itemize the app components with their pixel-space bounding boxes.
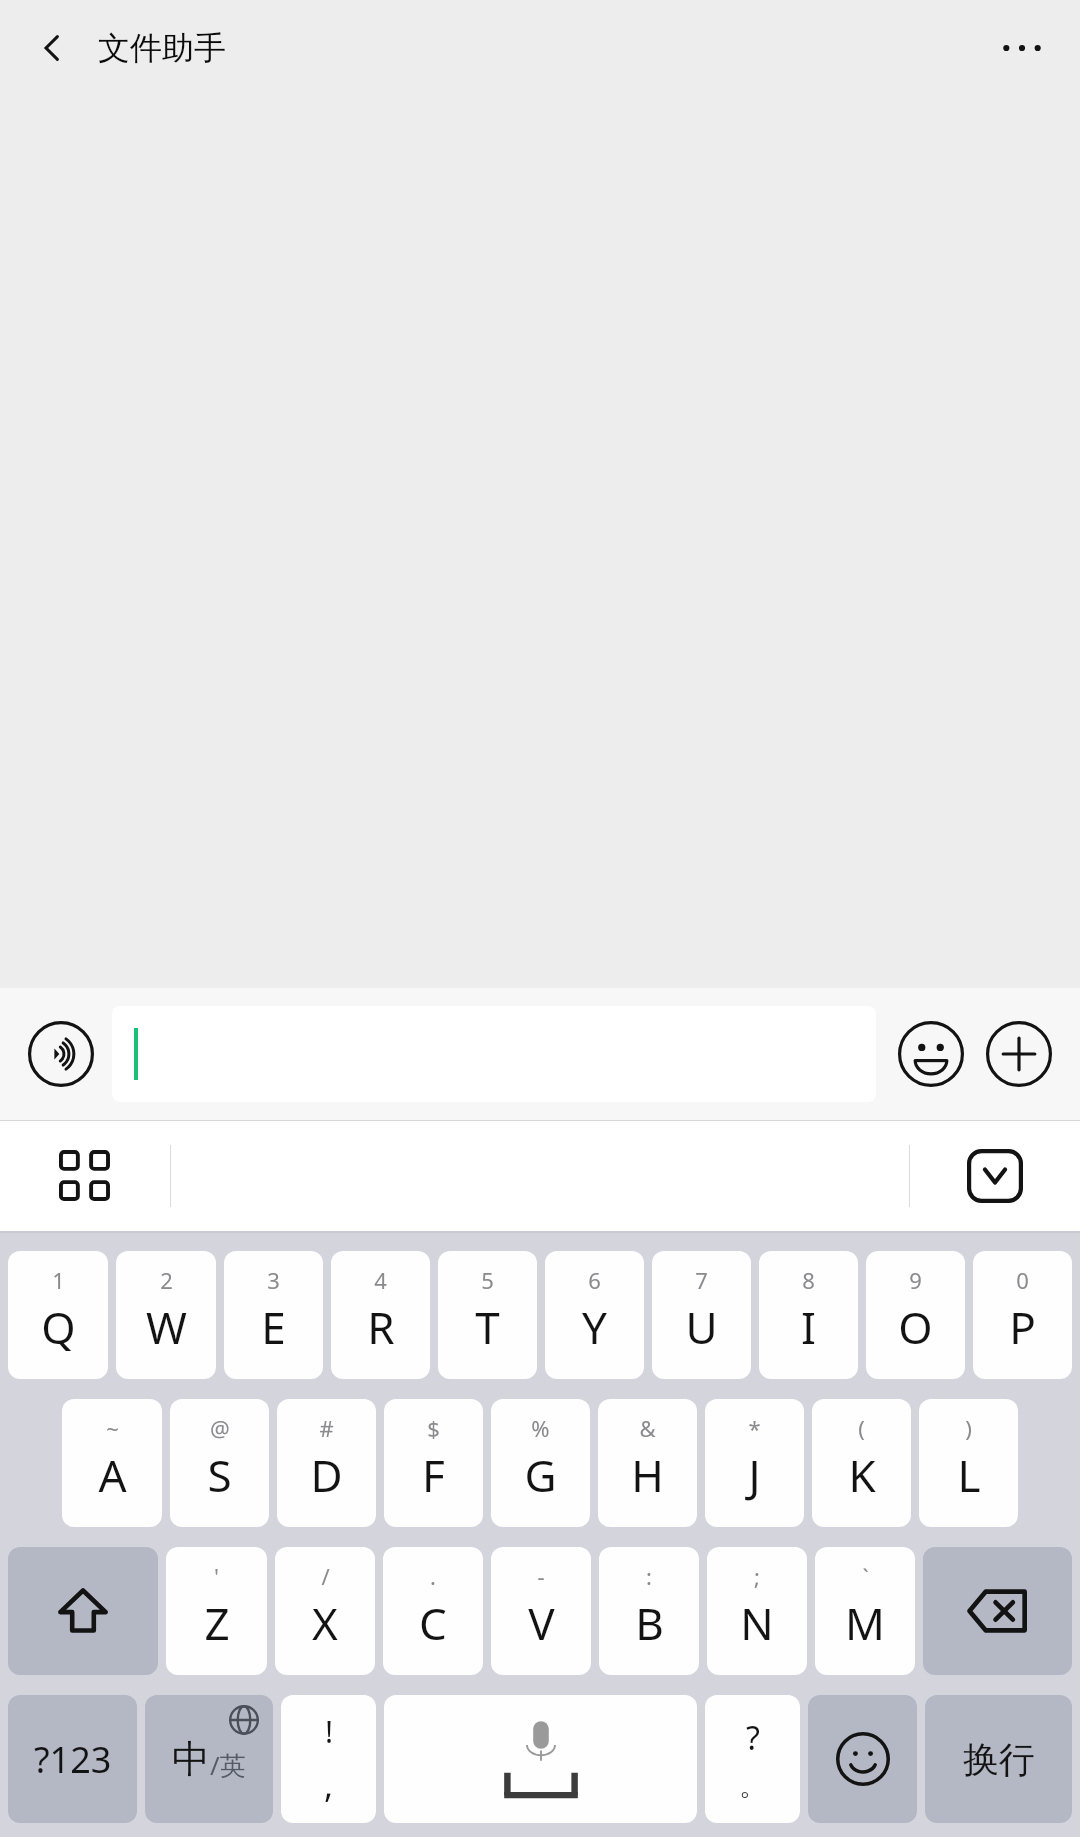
button[interactable]: Shift bbox=[8, 1547, 158, 1675]
staticText: Z bbox=[204, 1593, 230, 1653]
staticText: 。 bbox=[739, 1768, 767, 1803]
staticText: 1 bbox=[52, 1265, 65, 1295]
staticText: . bbox=[430, 1561, 436, 1591]
staticText: % bbox=[531, 1413, 550, 1443]
staticText: * bbox=[748, 1413, 761, 1443]
staticText: 3 bbox=[267, 1265, 280, 1295]
button[interactable]: # bbox=[277, 1399, 376, 1527]
staticText: : bbox=[646, 1561, 652, 1591]
button[interactable]: 3 bbox=[224, 1251, 323, 1379]
button[interactable]: Back bbox=[20, 16, 84, 80]
staticText: Q bbox=[41, 1297, 76, 1357]
button[interactable]: 7 bbox=[652, 1251, 751, 1379]
button[interactable]: Emoji keyboard bbox=[808, 1695, 917, 1823]
staticText: / bbox=[321, 1561, 330, 1591]
button[interactable]: Hide keyboard bbox=[910, 1121, 1080, 1231]
staticText: V bbox=[528, 1593, 555, 1653]
staticText: ? bbox=[746, 1716, 760, 1760]
button[interactable]: ?123 bbox=[8, 1695, 137, 1823]
button[interactable]: ' bbox=[166, 1547, 267, 1675]
button[interactable]: 0 bbox=[973, 1251, 1072, 1379]
staticText: ) bbox=[965, 1413, 972, 1443]
staticText: 6 bbox=[588, 1265, 601, 1295]
staticText: D bbox=[310, 1445, 343, 1505]
staticText: I bbox=[801, 1297, 816, 1357]
staticText: 5 bbox=[481, 1265, 494, 1295]
button[interactable]: 2 bbox=[116, 1251, 216, 1379]
button[interactable]: Keyboard panel bbox=[0, 1121, 170, 1231]
staticText: R bbox=[367, 1297, 395, 1357]
button[interactable]: ! bbox=[281, 1695, 376, 1823]
staticText: W bbox=[146, 1297, 187, 1357]
button[interactable]: . bbox=[383, 1547, 483, 1675]
staticText: Y bbox=[582, 1297, 607, 1357]
button[interactable]: ; bbox=[707, 1547, 807, 1675]
staticText: - bbox=[537, 1561, 545, 1591]
staticText: 8 bbox=[802, 1265, 815, 1295]
staticText: 4 bbox=[374, 1265, 387, 1295]
staticText: 中 bbox=[172, 1735, 210, 1783]
button[interactable]: Space bbox=[384, 1695, 697, 1823]
staticText: ; bbox=[754, 1561, 760, 1591]
staticText: 9 bbox=[909, 1265, 922, 1295]
button[interactable]: More functions bbox=[980, 1015, 1058, 1093]
staticText: P bbox=[1009, 1297, 1036, 1357]
button[interactable]: 5 bbox=[438, 1251, 537, 1379]
staticText: A bbox=[98, 1445, 127, 1505]
staticText: U bbox=[685, 1297, 718, 1357]
button[interactable]: Emoji bbox=[892, 1015, 970, 1093]
button[interactable]: 1 bbox=[8, 1251, 108, 1379]
button[interactable]: Voice input bbox=[22, 1015, 100, 1093]
button[interactable]: Backspace bbox=[923, 1547, 1072, 1675]
staticText: 7 bbox=[695, 1265, 708, 1295]
staticText: , bbox=[324, 1762, 334, 1808]
staticText: C bbox=[419, 1593, 447, 1653]
button[interactable]: / bbox=[275, 1547, 375, 1675]
staticText: X bbox=[312, 1593, 338, 1653]
button[interactable]: - bbox=[491, 1547, 591, 1675]
staticText: E bbox=[261, 1297, 286, 1357]
button[interactable]: @ bbox=[170, 1399, 269, 1527]
button[interactable]: 换行 bbox=[925, 1695, 1072, 1823]
staticText: 0 bbox=[1016, 1265, 1029, 1295]
button[interactable]: $ bbox=[384, 1399, 483, 1527]
button[interactable]: % bbox=[491, 1399, 590, 1527]
staticText: 2 bbox=[160, 1265, 173, 1295]
staticText: O bbox=[898, 1297, 933, 1357]
staticText: B bbox=[635, 1593, 664, 1653]
button[interactable]: ` bbox=[815, 1547, 915, 1675]
staticText: @ bbox=[210, 1413, 230, 1443]
staticText: K bbox=[848, 1445, 876, 1505]
button[interactable]: 4 bbox=[331, 1251, 430, 1379]
button[interactable]: 9 bbox=[866, 1251, 965, 1379]
button[interactable]: ~ bbox=[62, 1399, 162, 1527]
staticText: /英 bbox=[210, 1747, 246, 1783]
staticText: N bbox=[740, 1593, 774, 1653]
button[interactable]: * bbox=[705, 1399, 804, 1527]
staticText: ' bbox=[214, 1561, 219, 1591]
button[interactable]: 8 bbox=[759, 1251, 858, 1379]
staticText: ?123 bbox=[34, 1735, 112, 1784]
staticText: J bbox=[748, 1445, 761, 1505]
button[interactable]: 中 bbox=[145, 1695, 273, 1823]
button[interactable]: ) bbox=[919, 1399, 1018, 1527]
staticText: ( bbox=[858, 1413, 865, 1443]
button[interactable]: ( bbox=[812, 1399, 911, 1527]
button[interactable]: & bbox=[598, 1399, 697, 1527]
staticText: F bbox=[422, 1445, 445, 1505]
staticText: G bbox=[524, 1445, 557, 1505]
button[interactable]: : bbox=[599, 1547, 699, 1675]
staticText: ~ bbox=[106, 1413, 119, 1443]
staticText: ! bbox=[325, 1711, 334, 1752]
staticText: M bbox=[845, 1593, 885, 1653]
staticText: # bbox=[319, 1413, 334, 1443]
staticText: 换行 bbox=[963, 1737, 1035, 1782]
button[interactable]: More options bbox=[984, 10, 1060, 86]
button[interactable] bbox=[112, 1006, 876, 1102]
button[interactable]: ? bbox=[705, 1695, 800, 1823]
staticText: $ bbox=[427, 1413, 440, 1443]
staticText: 文件助手 bbox=[98, 28, 226, 68]
button[interactable]: 6 bbox=[545, 1251, 644, 1379]
staticText: H bbox=[631, 1445, 664, 1505]
staticText: & bbox=[639, 1413, 656, 1443]
